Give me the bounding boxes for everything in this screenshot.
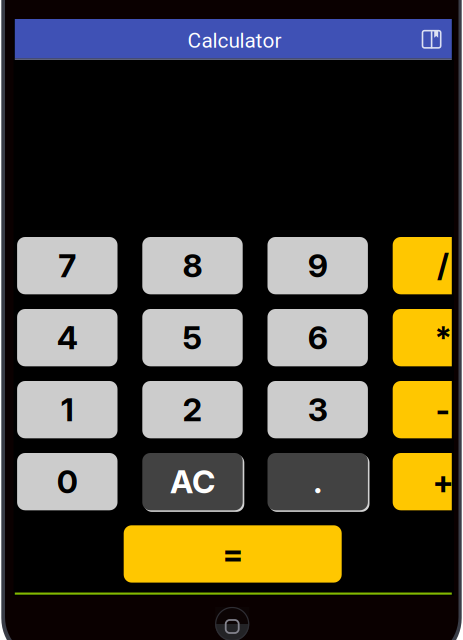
staticText: AC [170,462,215,501]
button[interactable]: . [267,453,370,512]
button[interactable]: Bookmarks [417,19,447,58]
staticText: 8 [182,246,202,285]
staticText: 5 [182,318,202,357]
button[interactable]: = [124,525,344,585]
staticText: = [222,535,243,573]
staticText: 4 [57,318,78,357]
button[interactable]: 1 [17,381,119,440]
staticText: * [434,318,451,357]
button[interactable]: / [393,237,463,296]
staticText: 3 [308,390,328,429]
button[interactable]: 4 [17,309,119,368]
staticText: 9 [308,246,328,285]
staticText: - [435,390,450,429]
staticText: / [437,246,449,285]
button[interactable]: + [393,453,463,512]
button[interactable]: 5 [142,309,245,368]
button[interactable]: - [393,381,463,440]
button[interactable]: 9 [267,237,370,296]
staticText: 1 [61,390,74,429]
staticText: . [313,462,322,501]
staticText: Calculator [187,28,281,53]
staticText: 6 [308,318,328,357]
staticText: 7 [58,246,76,285]
button[interactable]: 3 [267,381,370,440]
button[interactable]: 7 [17,237,119,296]
staticText: 0 [57,462,78,501]
staticText: 2 [182,390,202,429]
button[interactable]: 0 [17,453,119,512]
button[interactable]: 2 [142,381,245,440]
button[interactable]: 8 [142,237,245,296]
button[interactable]: 6 [267,309,370,368]
staticText: + [432,462,453,501]
button[interactable]: AC [142,453,245,512]
button[interactable]: * [393,309,463,368]
